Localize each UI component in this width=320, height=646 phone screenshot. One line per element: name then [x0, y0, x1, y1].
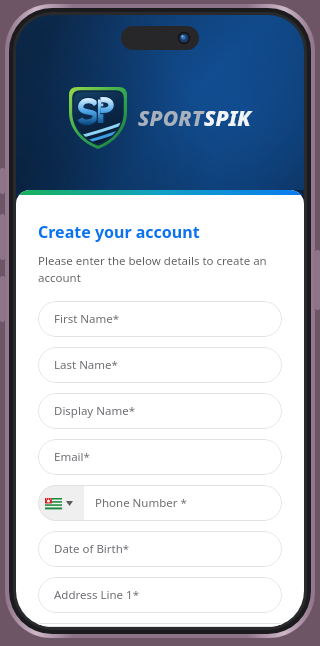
button[interactable]: Email*: [38, 439, 282, 475]
staticText: Email*: [54, 449, 90, 465]
staticText: Display Name*: [54, 403, 135, 419]
staticText: First Name*: [54, 311, 120, 327]
staticText: SPIK: [204, 104, 251, 133]
staticText: Phone Number *: [95, 495, 187, 511]
button[interactable]: Address Line 1*: [38, 577, 282, 613]
button[interactable]: Date of Birth*: [38, 531, 282, 567]
staticText: Address Line 2: [54, 623, 133, 627]
button[interactable]: Last Name*: [38, 347, 282, 383]
staticText: Date of Birth*: [54, 541, 130, 557]
button[interactable]: Select country code: [38, 485, 84, 521]
button[interactable]: Create your account: [38, 221, 200, 243]
staticText: SPORT: [138, 104, 204, 133]
button[interactable]: Address Line 2: [38, 623, 282, 627]
staticText: Address Line 1*: [54, 587, 139, 603]
button[interactable]: First Name*: [38, 301, 282, 337]
staticText: Last Name*: [54, 357, 118, 373]
button[interactable]: Display Name*: [38, 393, 282, 429]
staticText: Please enter the below details to create…: [38, 253, 282, 285]
button[interactable]: Select country code: [38, 485, 282, 521]
